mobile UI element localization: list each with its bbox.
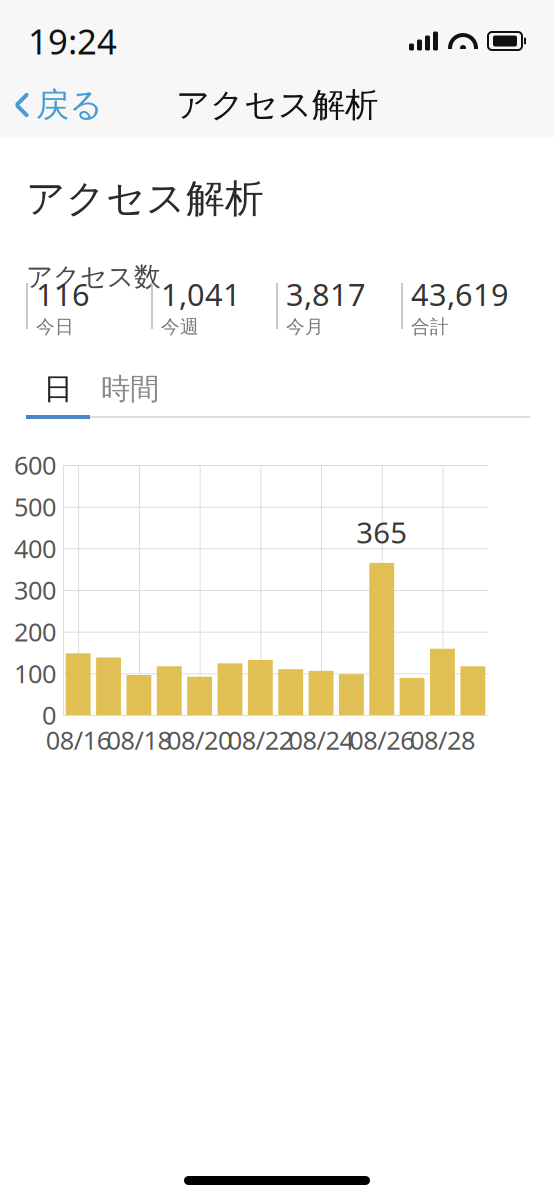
staticText: 08/28 [410, 723, 475, 757]
button[interactable]: 戻る [0, 82, 117, 128]
staticText: 08/26 [349, 723, 414, 757]
staticText: 時間 [101, 371, 159, 407]
staticText: 今週 [161, 315, 199, 338]
staticText: 08/22 [228, 723, 293, 757]
staticText: アクセス解析 [176, 84, 378, 125]
staticText: 08/16 [46, 723, 111, 757]
staticText: 08/18 [106, 723, 171, 757]
staticText: 19:24 [28, 18, 117, 64]
staticText: 今月 [286, 315, 324, 338]
staticText: 500 [14, 490, 56, 523]
staticText: 116 [36, 274, 90, 314]
staticText: 400 [14, 531, 56, 565]
staticText: 日 [43, 371, 72, 407]
staticText: 08/24 [288, 723, 353, 757]
staticText: 300 [14, 573, 56, 607]
staticText: アクセス解析 [26, 175, 264, 222]
staticText: 1,041 [161, 274, 241, 314]
staticText: 43,619 [411, 274, 509, 314]
staticText: 100 [14, 656, 56, 690]
staticText: アクセス数 [26, 260, 161, 293]
button[interactable]: 日 [26, 366, 90, 412]
button[interactable]: 時間 [90, 366, 170, 412]
staticText: 365 [356, 512, 407, 551]
staticText: 200 [14, 615, 56, 648]
staticText: 戻る [36, 84, 103, 125]
staticText: 今日 [36, 315, 74, 338]
staticText: 合計 [411, 315, 449, 338]
staticText: 3,817 [286, 274, 366, 314]
staticText: 08/20 [167, 723, 232, 757]
staticText: 0 [42, 698, 56, 732]
staticText: 600 [14, 448, 56, 482]
